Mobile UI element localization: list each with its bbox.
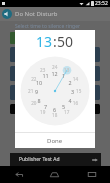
button[interactable]: Home [36,166,73,183]
button[interactable]: Done [39,134,71,148]
other: Open advertisement [91,156,98,163]
staticText: Select time to silence ringer [15,23,81,30]
button[interactable] [10,85,100,100]
staticText: 23:52 [95,0,108,7]
button[interactable]: Do Not Disturb [0,7,110,21]
button[interactable]: Publisher Test Ad [10,153,101,166]
button[interactable]: Recent apps [73,166,110,183]
button[interactable]: 8 [10,32,23,44]
button[interactable]: 13 [36,32,53,48]
staticText: : [53,32,57,48]
button[interactable]: Back [0,166,36,183]
button[interactable]: 50 [57,32,74,48]
button[interactable] [10,104,100,114]
button[interactable] [10,66,100,81]
button[interactable] [10,47,100,62]
staticText: Publisher Test Ad [19,156,60,163]
staticText: Done [47,137,63,145]
staticText: Do Not Disturb [15,10,58,18]
